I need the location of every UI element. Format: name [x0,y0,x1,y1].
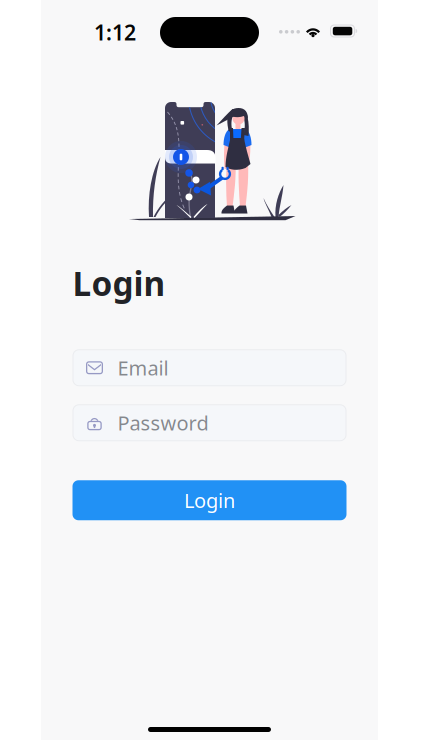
button[interactable]: Password [72,404,346,441]
staticText: Login [184,487,235,514]
button[interactable]: Login [72,480,346,520]
staticText: Email [117,354,168,381]
staticText: Password [117,409,208,436]
staticText: Login [72,261,165,305]
button[interactable]: Email [72,349,346,386]
staticText: 1:12 [94,18,136,46]
